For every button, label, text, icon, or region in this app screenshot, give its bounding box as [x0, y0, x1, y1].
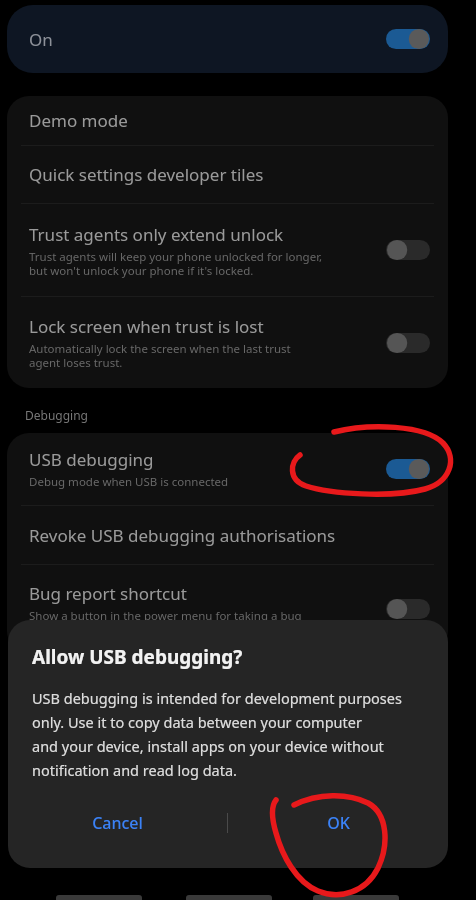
button[interactable]: On — [7, 5, 448, 73]
staticText: On — [29, 28, 386, 51]
staticText: Cancel — [92, 812, 143, 834]
staticText: Show a button in the power menu for taki… — [29, 608, 302, 637]
staticText: Demo mode — [29, 109, 128, 132]
staticText: OK — [327, 812, 350, 834]
button[interactable]: Revoke USB debugging authorisations — [7, 506, 448, 564]
button[interactable]: OK — [228, 796, 448, 850]
staticText: Automatically lock the screen when the l… — [29, 341, 291, 370]
button[interactable]: Toggle off — [386, 239, 430, 261]
button[interactable]: Toggle on — [386, 28, 430, 50]
staticText: Debugging — [25, 407, 88, 423]
staticText: Quick settings developer tiles — [29, 163, 264, 186]
button[interactable]: Cancel — [8, 796, 227, 850]
staticText: Revoke USB debugging authorisations — [29, 524, 336, 547]
button[interactable]: Toggle off — [386, 332, 430, 354]
button[interactable]: USB debugging — [7, 433, 448, 505]
button[interactable]: Trust agents only extend unlock — [7, 204, 448, 296]
staticText: Bug report shortcut — [29, 582, 187, 605]
button[interactable]: Bug report shortcut — [7, 565, 448, 653]
staticText: Trust agents only extend unlock — [29, 223, 284, 246]
staticText: Debug mode when USB is connected — [29, 474, 229, 490]
staticText: USB debugging — [29, 448, 154, 471]
button[interactable]: Demo mode — [7, 96, 448, 145]
button[interactable]: Toggle on — [386, 458, 430, 480]
staticText: Trust agents will keep your phone unlock… — [29, 249, 323, 278]
staticText: Allow USB debugging? — [32, 644, 243, 670]
button[interactable]: Lock screen when trust is lost — [7, 297, 448, 388]
staticText: Lock screen when trust is lost — [29, 315, 264, 338]
button[interactable]: Toggle off — [386, 598, 430, 620]
staticText: USB debugging is intended for developmen… — [32, 688, 402, 780]
button[interactable]: Quick settings developer tiles — [7, 146, 448, 203]
